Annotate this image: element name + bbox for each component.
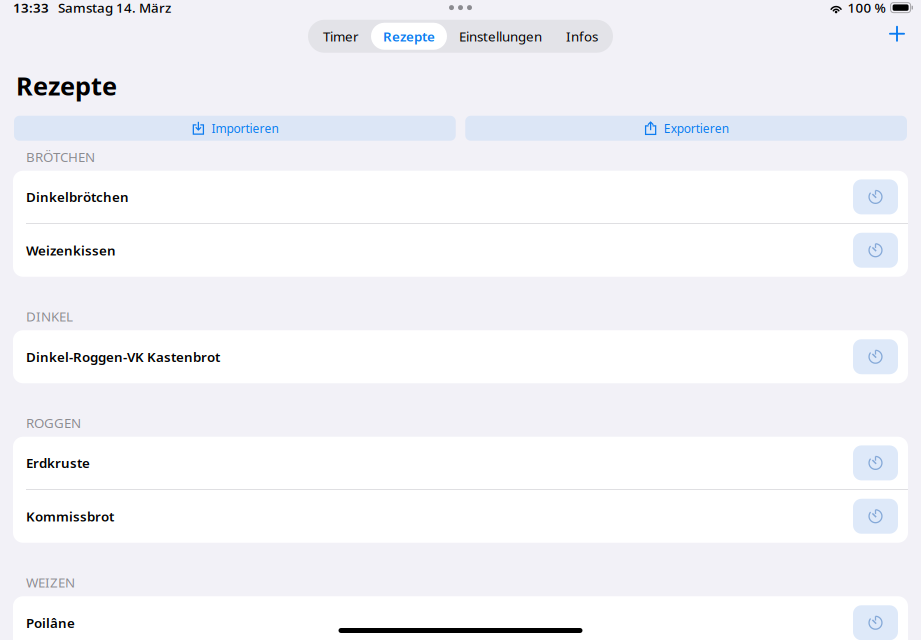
- staticText: 100 %: [848, 0, 886, 16]
- button[interactable]: Timer für Dinkel-Roggen-VK Kastenbrot: [853, 339, 898, 374]
- staticText: Dinkelbrötchen: [26, 188, 129, 206]
- staticText: DINKEL: [26, 307, 73, 325]
- staticText: Weizenkissen: [26, 241, 116, 259]
- staticText: Poilâne: [26, 614, 75, 632]
- button[interactable]: Rezepte: [371, 23, 447, 50]
- staticText: BRÖTCHEN: [26, 148, 95, 166]
- staticText: Dinkel-Roggen-VK Kastenbrot: [26, 348, 220, 366]
- button[interactable]: Timer: [311, 23, 371, 50]
- button[interactable]: Dinkel-Roggen-VK Kastenbrot: [13, 330, 908, 383]
- staticText: Samstag 14. März: [58, 0, 171, 16]
- button[interactable]: Erdkruste: [13, 437, 908, 489]
- button[interactable]: Timer für Erdkruste: [853, 445, 898, 480]
- button[interactable]: Rezept hinzufügen: [881, 18, 913, 50]
- staticText: ROGGEN: [26, 414, 81, 432]
- staticText: Exportieren: [664, 120, 729, 136]
- staticText: Rezepte: [383, 27, 435, 45]
- button[interactable]: Dinkelbrötchen: [13, 171, 908, 223]
- button[interactable]: Timer für Poilâne: [853, 605, 898, 640]
- button[interactable]: Timer für Dinkelbrötchen: [853, 179, 898, 214]
- button[interactable]: Poilâne: [13, 596, 908, 640]
- staticText: Einstellungen: [459, 27, 542, 45]
- button[interactable]: Infos: [554, 23, 610, 50]
- staticText: WEIZEN: [26, 573, 75, 591]
- button[interactable]: Weizenkissen: [13, 224, 908, 277]
- staticText: Timer: [323, 27, 359, 45]
- staticText: Infos: [566, 27, 598, 45]
- staticText: Kommissbrot: [26, 507, 114, 525]
- button[interactable]: Einstellungen: [447, 23, 554, 50]
- button[interactable]: Importieren: [14, 116, 456, 141]
- staticText: Importieren: [211, 120, 278, 136]
- button[interactable]: Exportieren: [465, 116, 907, 141]
- staticText: Rezepte: [16, 69, 117, 102]
- button[interactable]: Timer für Kommissbrot: [853, 499, 898, 534]
- button[interactable]: Kommissbrot: [13, 490, 908, 543]
- staticText: 13:33: [13, 0, 49, 16]
- button[interactable]: Timer für Weizenkissen: [853, 233, 898, 268]
- staticText: Erdkruste: [26, 454, 90, 472]
